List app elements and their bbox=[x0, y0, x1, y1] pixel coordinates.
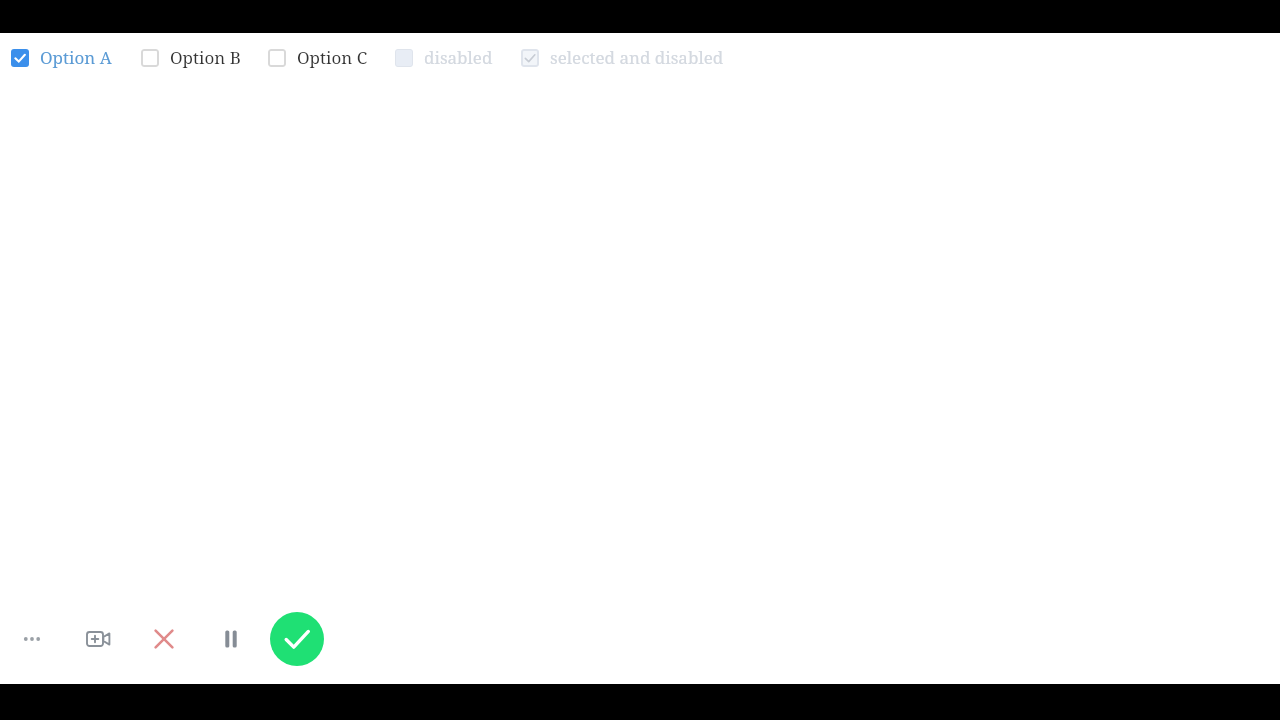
button[interactable]: selected and disabled bbox=[521, 46, 724, 69]
staticText: disabled bbox=[424, 46, 493, 69]
button[interactable]: disabled bbox=[395, 46, 493, 69]
button[interactable]: Confirm bbox=[270, 612, 324, 666]
button[interactable]: Option B bbox=[141, 46, 241, 69]
staticText: Option C bbox=[297, 46, 368, 69]
button[interactable]: Option C bbox=[268, 46, 368, 69]
button[interactable]: More options bbox=[10, 617, 54, 661]
button[interactable]: Add video bbox=[69, 611, 125, 667]
button[interactable]: Option A bbox=[11, 46, 112, 69]
staticText: Option A bbox=[40, 46, 112, 69]
staticText: Option B bbox=[170, 46, 241, 69]
staticText: selected and disabled bbox=[550, 46, 724, 69]
button[interactable]: Cancel bbox=[136, 611, 192, 667]
button[interactable]: Pause bbox=[203, 611, 259, 667]
